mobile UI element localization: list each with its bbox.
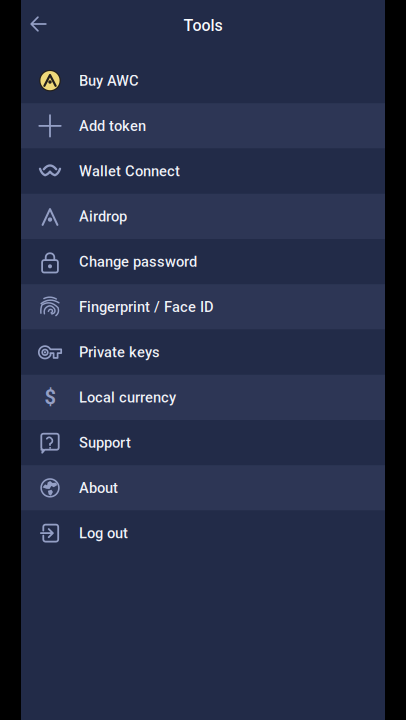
button[interactable]: Add token: [21, 103, 385, 148]
staticText: Tools: [183, 16, 222, 35]
staticText: Buy AWC: [79, 72, 139, 89]
staticText: Add token: [79, 117, 146, 134]
staticText: Local currency: [79, 389, 176, 406]
staticText: Log out: [79, 524, 128, 542]
button[interactable]: Wallet Connect: [21, 148, 385, 194]
staticText: Airdrop: [79, 208, 127, 225]
staticText: About: [79, 479, 118, 496]
button[interactable]: About: [21, 465, 385, 510]
staticText: Wallet Connect: [79, 162, 180, 180]
staticText: Private keys: [79, 343, 160, 361]
button[interactable]: Back: [21, 0, 56, 48]
button[interactable]: Log out: [21, 510, 385, 556]
button[interactable]: Fingerprint / Face ID: [21, 284, 385, 329]
button[interactable]: Change password: [21, 239, 385, 284]
button[interactable]: Support: [21, 420, 385, 465]
staticText: Fingerprint / Face ID: [79, 298, 214, 315]
staticText: Change password: [79, 253, 197, 270]
staticText: Support: [79, 434, 131, 451]
button[interactable]: $: [21, 375, 385, 420]
button[interactable]: Airdrop: [21, 194, 385, 239]
staticText: $: [44, 386, 55, 409]
button[interactable]: Buy AWC: [21, 58, 385, 103]
button[interactable]: Private keys: [21, 329, 385, 375]
